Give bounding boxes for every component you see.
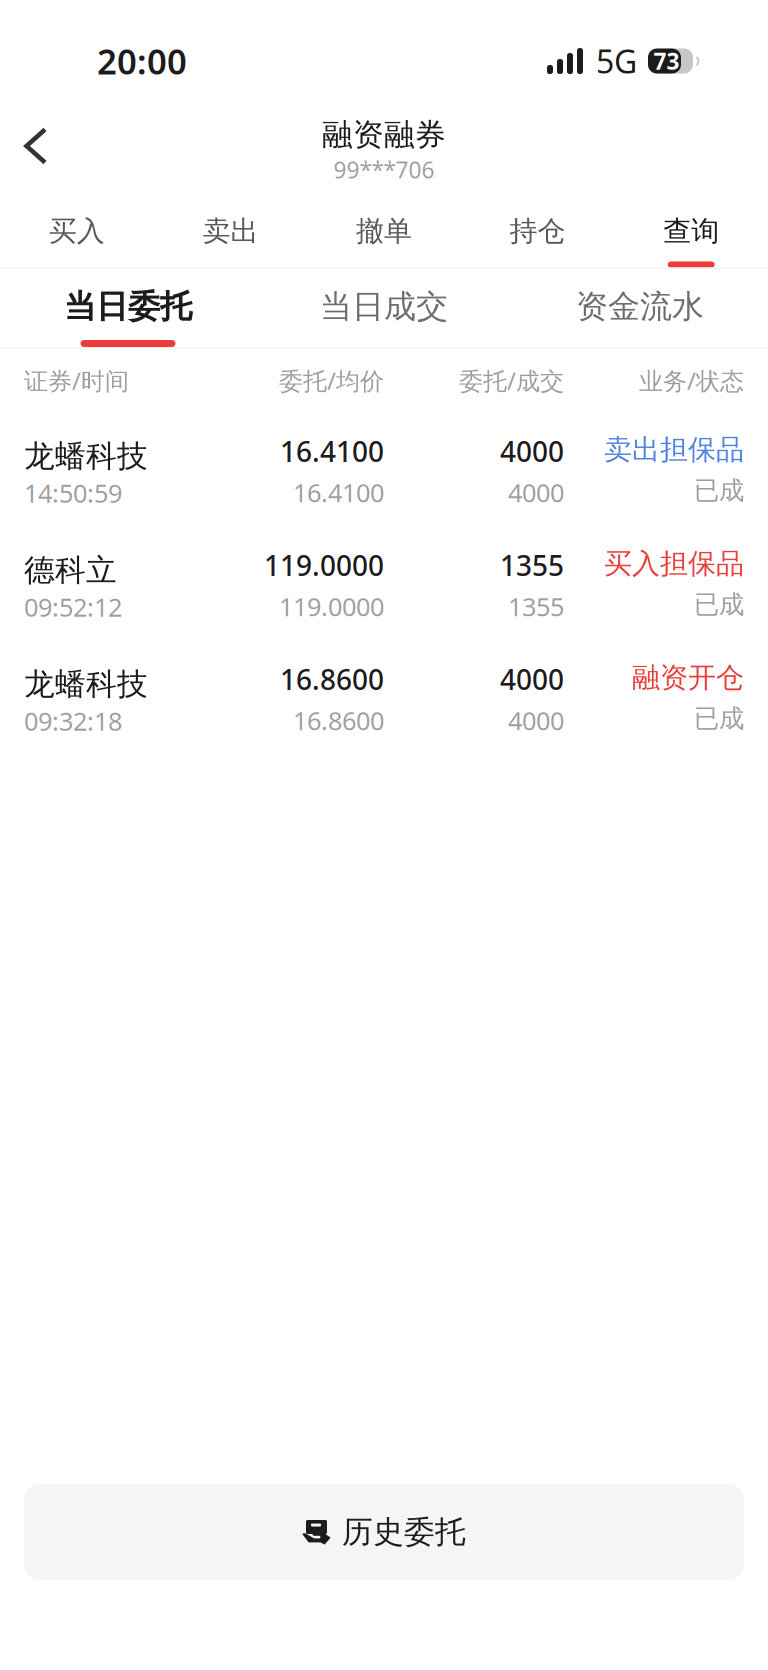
staticText: 4000	[508, 476, 564, 509]
staticText: 5G	[596, 40, 637, 82]
staticText: 20:00	[97, 38, 187, 84]
staticText: 4000	[508, 704, 564, 737]
button[interactable]: 查询	[614, 195, 768, 267]
button[interactable]: 德科立	[0, 523, 768, 637]
staticText: 09:52:12	[24, 590, 122, 624]
staticText: 德科立	[24, 551, 117, 589]
button[interactable]: 当日成交	[256, 269, 512, 347]
staticText: 委托/成交	[459, 364, 564, 396]
button[interactable]: 买入	[0, 195, 154, 267]
staticText: 历史委托	[342, 1513, 466, 1551]
staticText: 4000	[500, 432, 564, 470]
staticText: 买入	[49, 214, 105, 248]
staticText: 1355	[508, 590, 564, 623]
staticText: 卖出担保品	[604, 432, 744, 467]
staticText: 16.8600	[293, 704, 384, 737]
staticText: 撤单	[356, 214, 412, 248]
staticText: 4000	[500, 660, 564, 698]
staticText: 16.4100	[293, 476, 384, 509]
button[interactable]: Back	[0, 96, 71, 180]
staticText: 买入担保品	[604, 546, 744, 581]
staticText: 委托/均价	[279, 364, 384, 396]
staticText: 已成	[694, 589, 744, 620]
staticText: 龙蟠科技	[24, 437, 148, 475]
staticText: 119.0000	[264, 546, 384, 584]
staticText: 资金流水	[576, 287, 704, 326]
staticText: 融资融券	[322, 116, 446, 154]
button[interactable]: 龙蟠科技	[0, 637, 768, 751]
button[interactable]: 历史委托	[24, 1484, 744, 1580]
button[interactable]: 龙蟠科技	[0, 409, 768, 523]
button[interactable]: 持仓	[461, 195, 614, 267]
staticText: 卖出	[202, 214, 258, 248]
staticText: 1355	[500, 546, 564, 584]
staticText: 14:50:59	[24, 476, 122, 510]
staticText: 16.8600	[280, 660, 384, 698]
button[interactable]: 资金流水	[512, 269, 768, 347]
staticText: 证券/时间	[24, 364, 129, 396]
staticText: 09:32:18	[24, 704, 122, 738]
staticText: 当日成交	[320, 287, 448, 326]
staticText: 当日委托	[64, 287, 192, 326]
staticText: 融资开仓	[632, 660, 744, 695]
staticText: 73	[653, 46, 679, 76]
button[interactable]: 卖出	[154, 195, 307, 267]
staticText: 16.4100	[280, 432, 384, 470]
staticText: 已成	[694, 475, 744, 506]
staticText: 龙蟠科技	[24, 665, 148, 703]
button[interactable]: 当日委托	[0, 269, 256, 347]
staticText: 已成	[694, 703, 744, 734]
staticText: 查询	[663, 214, 719, 248]
staticText: 119.0000	[279, 590, 384, 623]
staticText: 业务/状态	[639, 364, 744, 396]
button[interactable]: 撤单	[307, 195, 461, 267]
staticText: 99***706	[333, 155, 434, 185]
staticText: 持仓	[510, 214, 566, 248]
